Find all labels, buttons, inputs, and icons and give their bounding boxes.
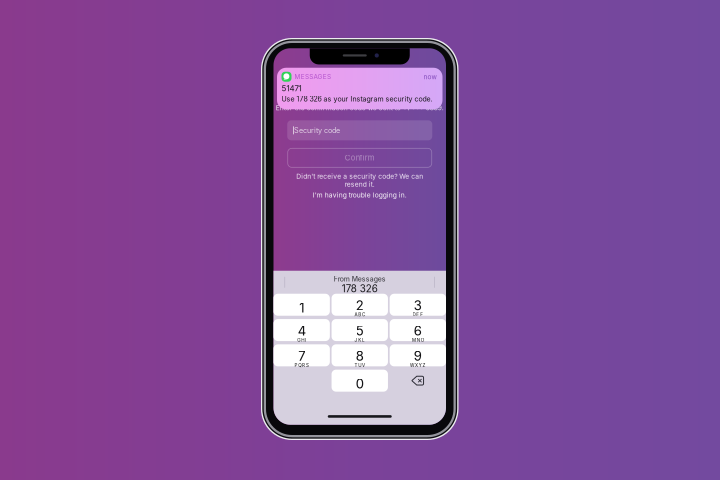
staticText: From Messages: [334, 275, 386, 283]
staticText: Use 178 326 as your Instagram security c…: [281, 95, 432, 103]
button[interactable]: 6: [390, 319, 446, 341]
button[interactable]: 0: [332, 370, 388, 392]
button[interactable]: 1: [273, 294, 330, 316]
staticText: Didn't receive a security code? We can: [296, 172, 423, 180]
staticText: MESSAGES: [294, 73, 331, 81]
button[interactable]: 5: [332, 319, 388, 341]
staticText: I'm having trouble logging in.: [313, 191, 407, 199]
staticText: resend it.: [345, 180, 375, 188]
button[interactable]: 3: [390, 294, 446, 316]
staticText: 6: [414, 323, 422, 339]
button[interactable]: 2: [332, 294, 388, 316]
staticText: DEF: [412, 312, 423, 317]
staticText: now: [423, 73, 436, 81]
staticText: Security code: [294, 126, 340, 135]
staticText: JKL: [354, 337, 365, 343]
staticText: 5: [356, 323, 364, 339]
staticText: WXYZ: [410, 363, 426, 368]
staticText: 9: [414, 348, 422, 364]
button[interactable]: I'm having trouble logging in.: [313, 191, 407, 199]
button[interactable]: MESSAGES: [277, 68, 442, 109]
staticText: 4: [298, 323, 306, 339]
button[interactable]: Didn't receive a security code? We can: [296, 172, 423, 188]
staticText: 1: [299, 300, 304, 316]
button[interactable]: 4: [273, 319, 330, 341]
button[interactable]: 7: [273, 344, 330, 366]
staticText: TUV: [354, 363, 365, 368]
staticText: ABC: [354, 312, 365, 317]
staticText: GHI: [297, 337, 306, 343]
staticText: 178 326: [342, 283, 378, 295]
staticText: 0: [356, 376, 364, 392]
staticText: Enter the confirmation code we sent to +…: [276, 104, 444, 112]
staticText: Confirm: [345, 153, 375, 162]
staticText: MNO: [412, 337, 424, 343]
button[interactable]: 8: [332, 344, 388, 366]
staticText: 7: [298, 348, 305, 364]
staticText: 51471: [281, 84, 301, 93]
button[interactable]: Delete: [390, 370, 446, 392]
button[interactable]: 9: [390, 344, 446, 366]
staticText: PQRS: [294, 363, 309, 368]
staticText: 8: [356, 348, 364, 364]
button[interactable]: Confirm: [288, 148, 432, 167]
staticText: 3: [414, 298, 422, 313]
staticText: 2: [356, 298, 364, 313]
